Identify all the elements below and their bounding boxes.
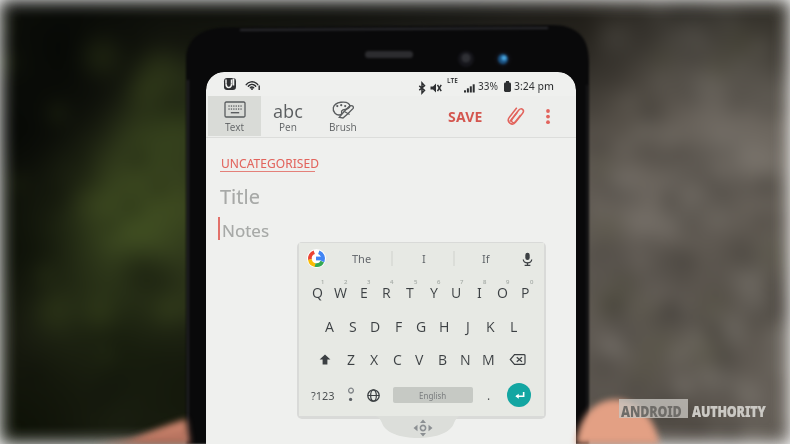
- staticText: 5: [414, 278, 418, 286]
- staticText: UNCATEGORISED: [221, 155, 319, 171]
- staticText: X: [370, 350, 379, 369]
- staticText: F: [395, 317, 403, 336]
- button[interactable]: .: [479, 380, 499, 410]
- button[interactable]: Q: [306, 277, 329, 308]
- staticText: English: [419, 390, 447, 401]
- staticText: 0: [530, 278, 534, 286]
- button[interactable]: Emoji: [341, 380, 361, 410]
- button[interactable]: More options: [534, 96, 562, 137]
- button[interactable]: I: [395, 243, 453, 274]
- staticText: W: [334, 283, 348, 302]
- staticText: abc: [273, 99, 303, 124]
- staticText: A: [325, 317, 334, 336]
- staticText: B: [438, 350, 448, 369]
- staticText: ANDROID: [621, 400, 682, 422]
- button[interactable]: G: [410, 311, 433, 342]
- button[interactable]: B: [431, 344, 454, 375]
- button[interactable]: I: [468, 277, 491, 308]
- staticText: If: [482, 251, 490, 266]
- staticText: Pen: [279, 120, 297, 134]
- staticText: AUTHORITY: [692, 400, 766, 422]
- button[interactable]: Voice input: [513, 243, 541, 274]
- staticText: Q: [312, 283, 323, 302]
- button[interactable]: F: [387, 311, 410, 342]
- staticText: H: [439, 317, 450, 336]
- staticText: D: [370, 317, 381, 336]
- staticText: I: [422, 251, 426, 266]
- staticText: J: [466, 317, 470, 336]
- button[interactable]: U: [445, 277, 468, 308]
- button[interactable]: L: [502, 311, 525, 342]
- button[interactable]: E: [352, 277, 375, 308]
- button[interactable]: A: [318, 311, 341, 342]
- staticText: 1: [321, 278, 325, 286]
- staticText: SAVE: [448, 107, 483, 126]
- staticText: R: [382, 283, 391, 302]
- button[interactable]: Shift: [313, 344, 336, 375]
- staticText: LTE: [447, 76, 458, 85]
- staticText: 33%: [478, 79, 498, 93]
- staticText: Title: [220, 183, 260, 210]
- button[interactable]: Text: [208, 96, 261, 136]
- staticText: Brush: [329, 120, 357, 134]
- staticText: M: [482, 350, 495, 369]
- staticText: C: [393, 350, 402, 369]
- button[interactable]: J: [456, 311, 479, 342]
- staticText: 6: [437, 278, 441, 286]
- button[interactable]: M: [477, 344, 500, 375]
- staticText: 8: [483, 278, 487, 286]
- button[interactable]: H: [433, 311, 456, 342]
- button[interactable]: Enter: [507, 383, 531, 407]
- staticText: G: [416, 317, 427, 336]
- staticText: L: [510, 317, 518, 336]
- button[interactable]: If: [457, 243, 515, 274]
- staticText: V: [415, 350, 424, 369]
- button[interactable]: Brush: [317, 96, 369, 136]
- staticText: 4: [390, 278, 394, 286]
- staticText: I: [477, 283, 482, 302]
- button[interactable]: C: [386, 344, 409, 375]
- staticText: N: [460, 350, 471, 369]
- button[interactable]: P: [514, 277, 537, 308]
- staticText: 2: [344, 278, 348, 286]
- staticText: 3: [367, 278, 371, 286]
- staticText: 3:24 pm: [514, 79, 555, 93]
- button[interactable]: S: [341, 311, 364, 342]
- button[interactable]: X: [363, 344, 386, 375]
- button[interactable]: Attach: [499, 96, 531, 137]
- button[interactable]: V: [408, 344, 431, 375]
- staticText: 9: [506, 278, 510, 286]
- staticText: Z: [347, 350, 356, 369]
- staticText: S: [349, 317, 357, 336]
- button[interactable]: abc: [262, 96, 314, 136]
- button[interactable]: ?123: [304, 380, 341, 410]
- button[interactable]: Z: [340, 344, 363, 375]
- button[interactable]: R: [375, 277, 398, 308]
- button[interactable]: English: [393, 387, 473, 403]
- staticText: T: [406, 283, 414, 302]
- staticText: K: [486, 317, 495, 336]
- staticText: Notes: [222, 219, 270, 242]
- button[interactable]: N: [454, 344, 477, 375]
- staticText: Text: [225, 120, 245, 134]
- staticText: 7: [460, 278, 464, 286]
- staticText: ?123: [311, 388, 335, 403]
- staticText: Y: [430, 283, 438, 302]
- button[interactable]: SAVE: [443, 96, 488, 137]
- staticText: P: [521, 283, 530, 302]
- staticText: O: [497, 283, 508, 302]
- staticText: U: [451, 283, 462, 302]
- button[interactable]: K: [479, 311, 502, 342]
- button[interactable]: The: [333, 243, 391, 274]
- button[interactable]: T: [398, 277, 421, 308]
- button[interactable]: W: [329, 277, 352, 308]
- button[interactable]: Backspace: [506, 344, 529, 375]
- staticText: .: [487, 387, 491, 403]
- staticText: The: [352, 251, 372, 266]
- button[interactable]: Y: [422, 277, 445, 308]
- button[interactable]: O: [491, 277, 514, 308]
- staticText: E: [360, 283, 368, 302]
- button[interactable]: D: [364, 311, 387, 342]
- button[interactable]: Change language: [363, 380, 384, 410]
